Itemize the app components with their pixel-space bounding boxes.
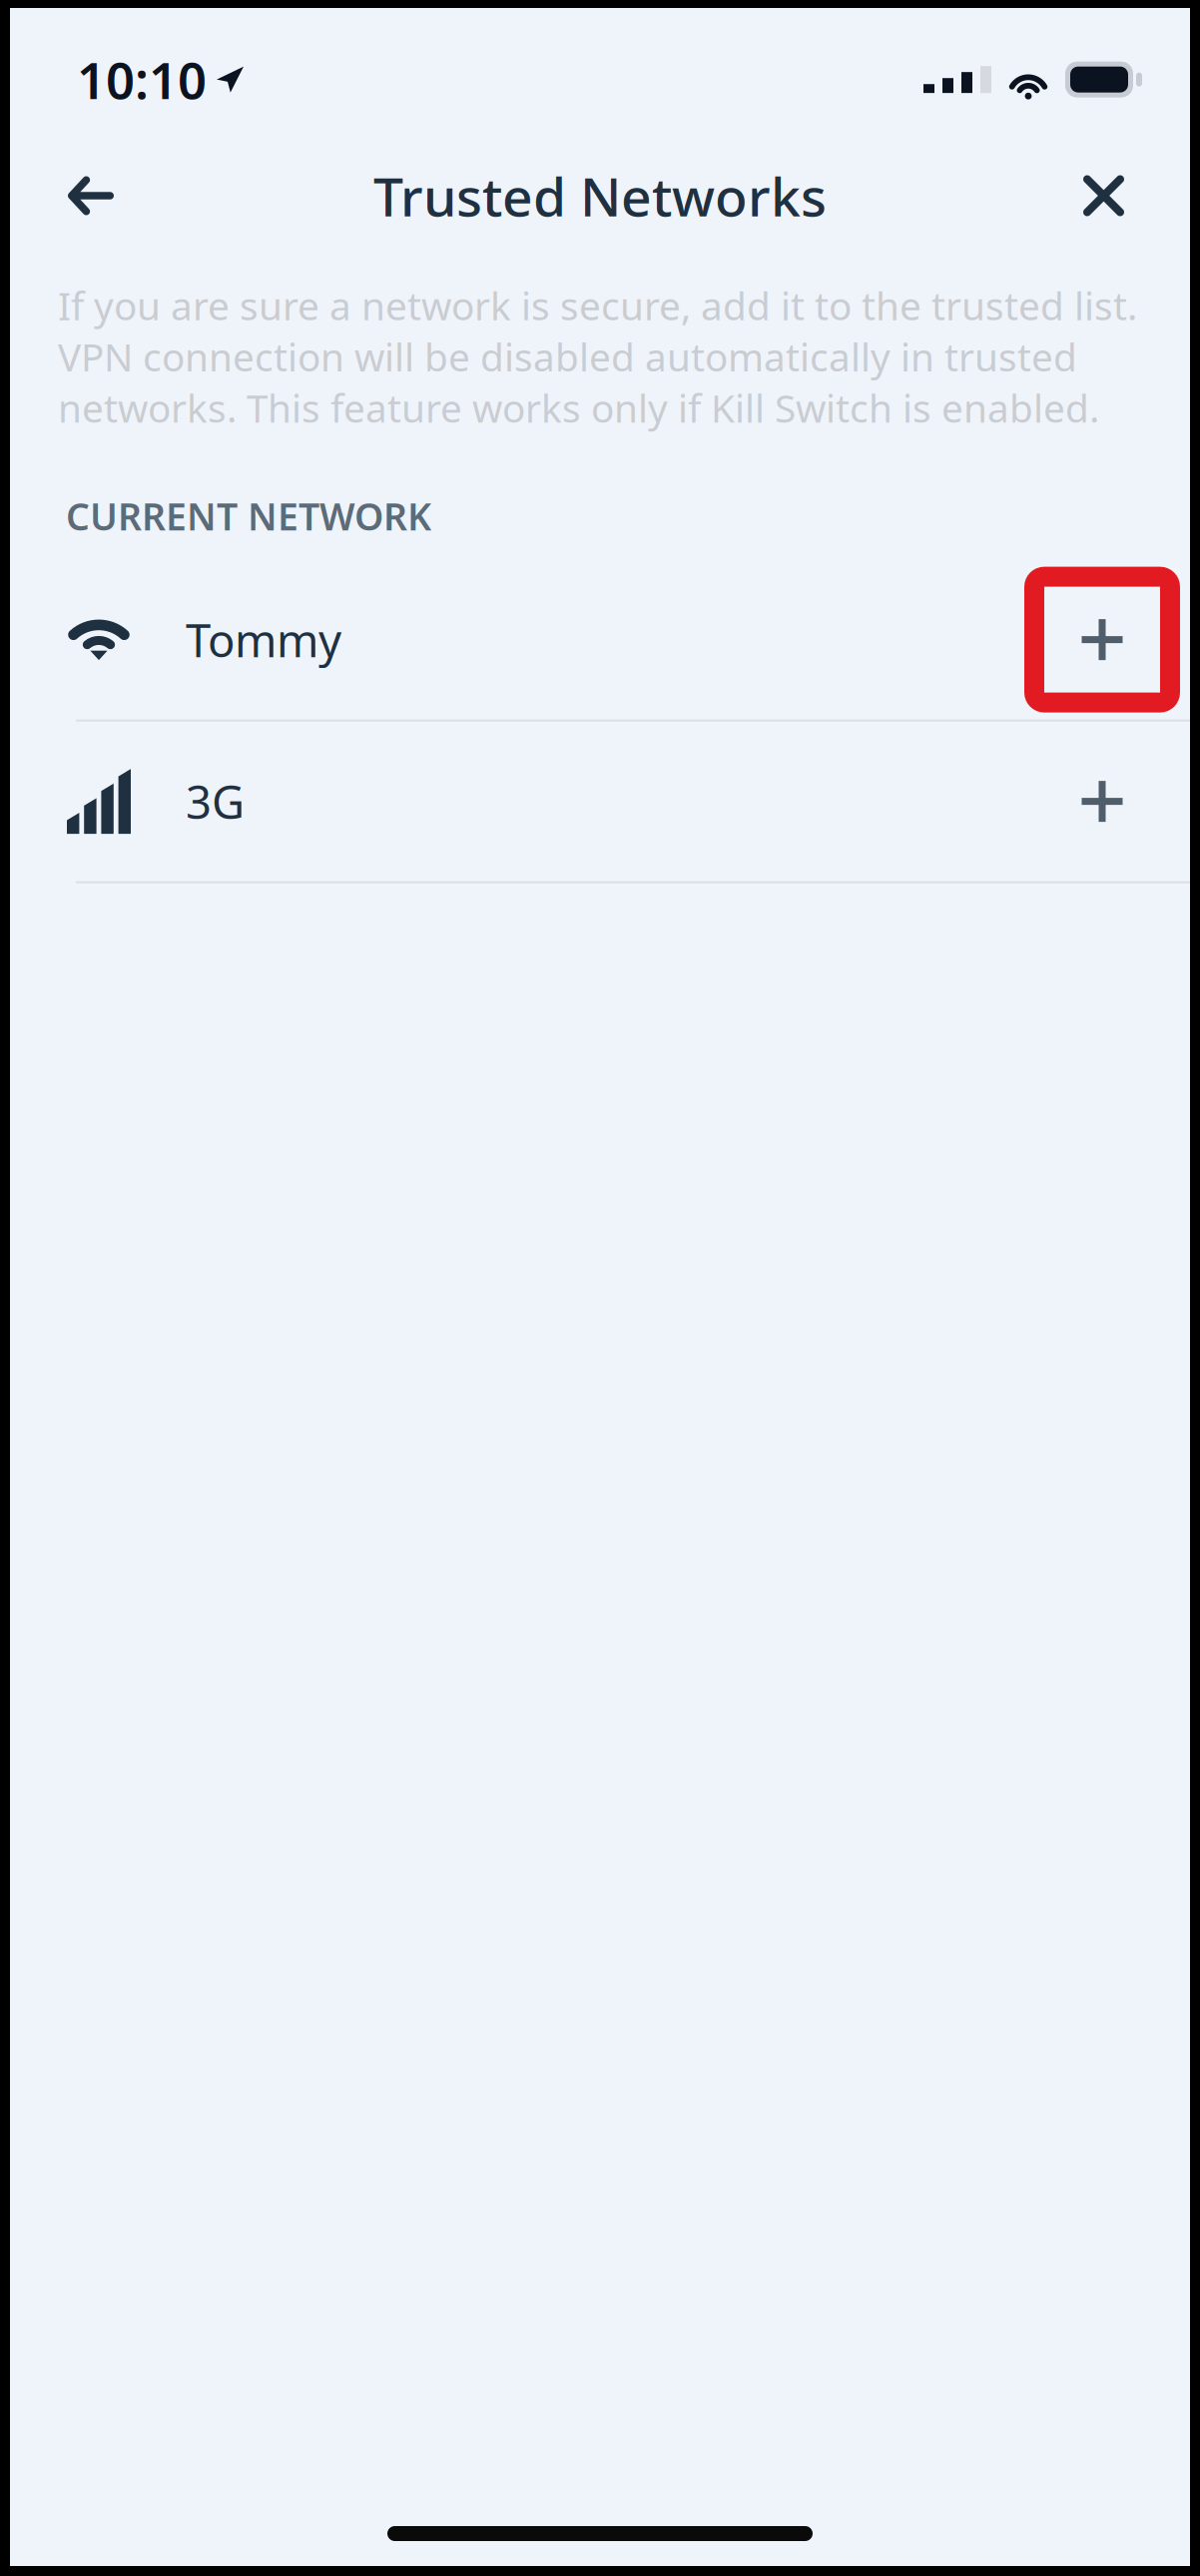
staticText: 10:10	[77, 46, 207, 113]
button[interactable]: Close	[1000, 141, 1120, 251]
button[interactable]: Back	[68, 141, 188, 251]
button[interactable]: Add 3G to trusted networks	[1024, 728, 1180, 874]
staticText: CURRENT NETWORK	[66, 491, 431, 541]
staticText: Trusted Networks	[373, 160, 827, 231]
staticText: 3G	[186, 771, 245, 831]
staticText: If you are sure a network is secure, add…	[58, 280, 1137, 433]
button[interactable]: Add Tommy to trusted networks	[1024, 567, 1180, 712]
staticText: Tommy	[186, 610, 341, 670]
